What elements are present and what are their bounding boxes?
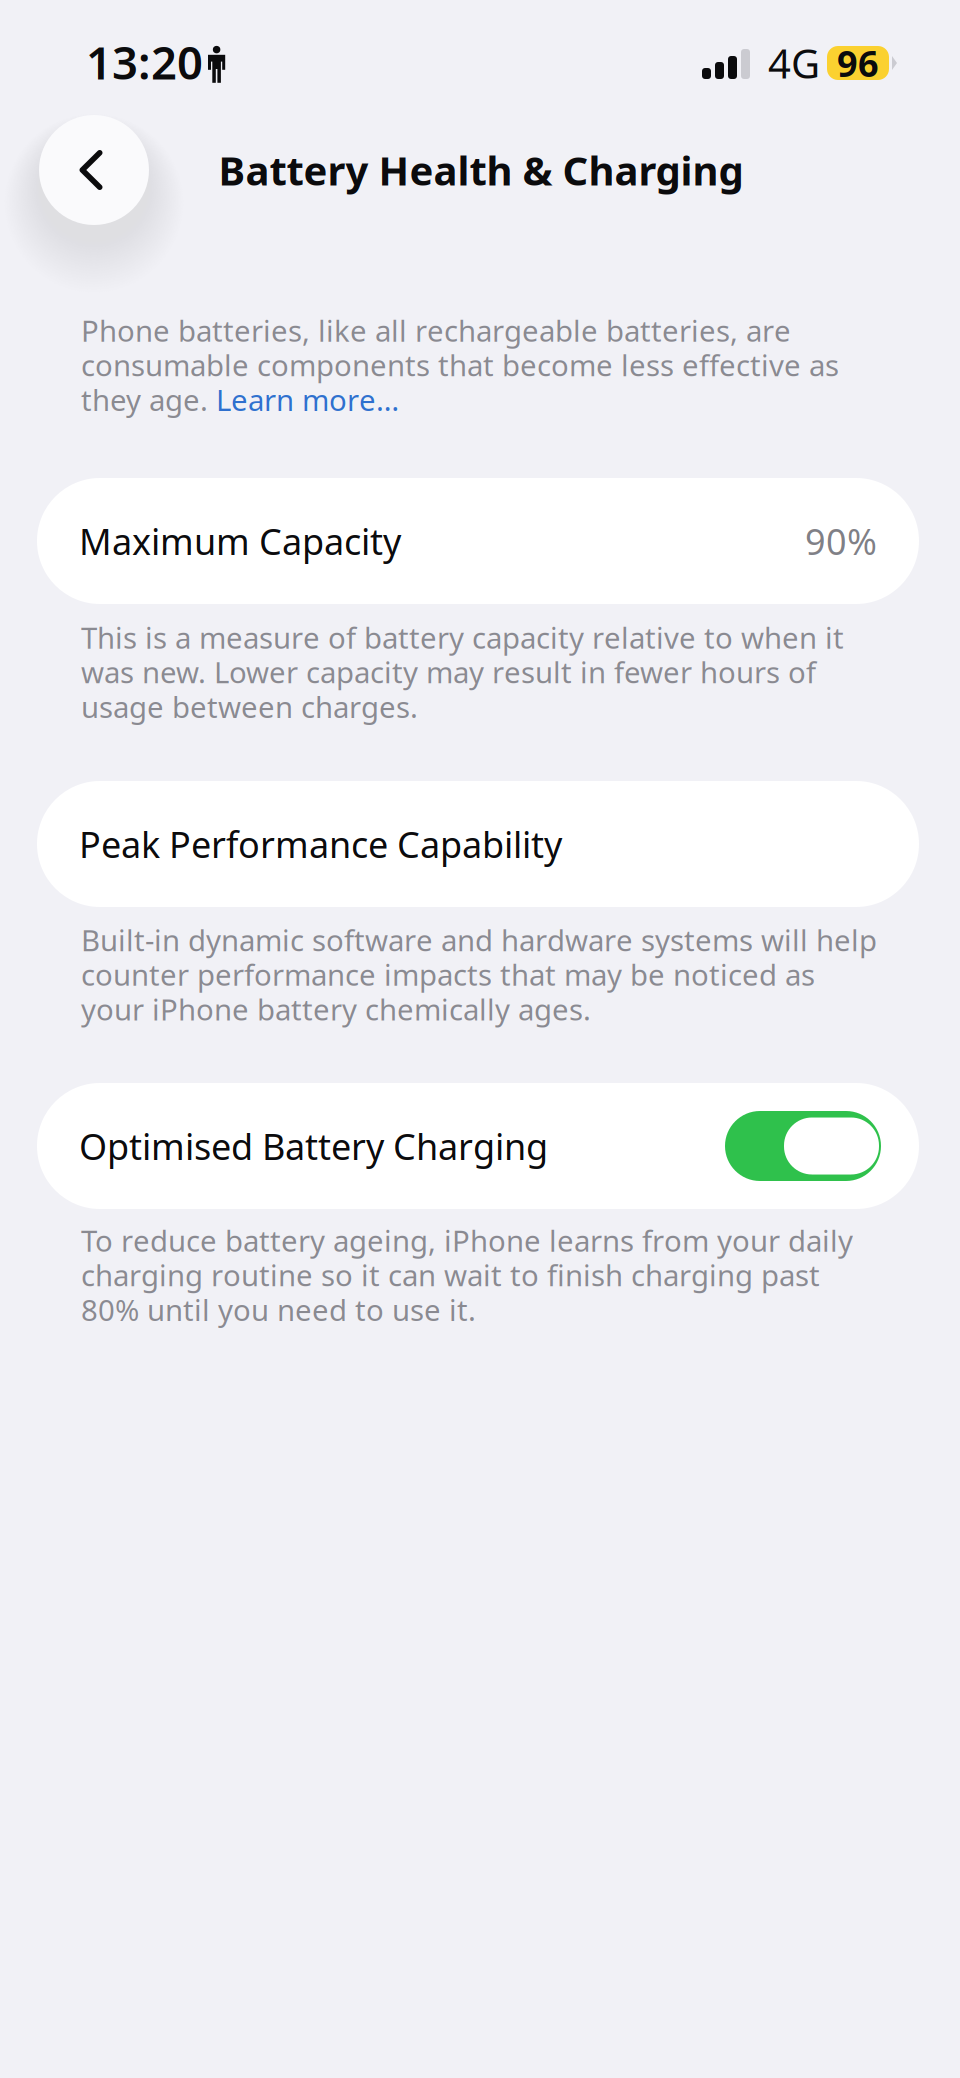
staticText: 4G — [768, 36, 820, 89]
staticText: 13:20 — [86, 32, 203, 92]
button[interactable]: Back — [39, 115, 149, 225]
staticText: consumable components that become less e… — [81, 345, 839, 384]
staticText: Phone batteries, like all rechargeable b… — [81, 311, 791, 350]
button[interactable]: Maximum Capacity — [37, 478, 919, 604]
staticText: they age. — [81, 380, 216, 419]
staticText: Maximum Capacity — [79, 517, 401, 565]
button[interactable]: Optimised Battery Charging — [37, 1083, 919, 1209]
staticText: usage between charges. — [81, 687, 418, 726]
staticText: charging routine so it can wait to finis… — [81, 1255, 820, 1294]
staticText: Battery Health & Charging — [218, 143, 743, 196]
staticText: counter performance impacts that may be … — [81, 955, 815, 994]
staticText: your iPhone battery chemically ages. — [81, 989, 591, 1028]
staticText: Peak Performance Capability — [79, 820, 562, 868]
button[interactable]: Peak Performance Capability — [37, 781, 919, 907]
staticText: 90% — [805, 517, 877, 565]
staticText: This is a measure of battery capacity re… — [81, 618, 844, 657]
staticText: Learn more… — [216, 380, 399, 419]
staticText: Built-in dynamic software and hardware s… — [81, 920, 877, 959]
staticText: was new. Lower capacity may result in fe… — [81, 652, 816, 691]
staticText: Optimised Battery Charging — [79, 1122, 548, 1170]
staticText: To reduce battery ageing, iPhone learns … — [81, 1221, 853, 1260]
staticText: 96 — [837, 39, 879, 87]
staticText: 80% until you need to use it. — [81, 1290, 476, 1329]
